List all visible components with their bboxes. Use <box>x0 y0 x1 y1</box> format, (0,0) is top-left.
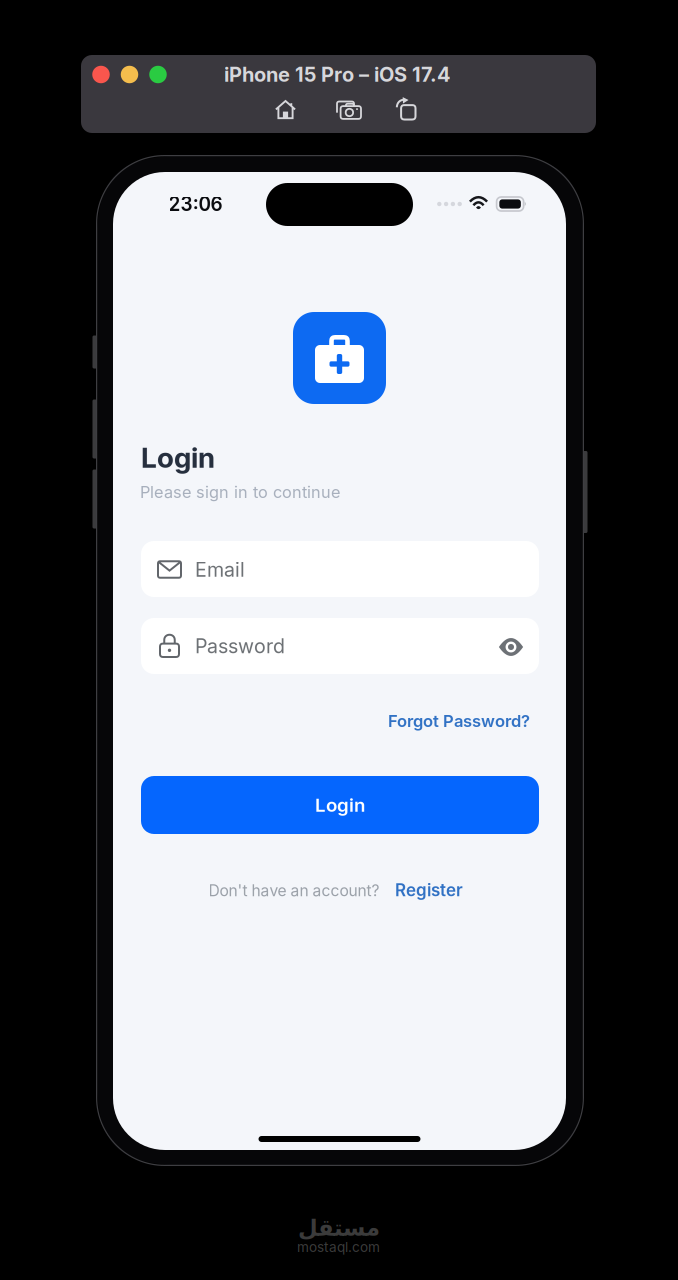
button[interactable]: Login <box>141 776 539 834</box>
staticText: Password <box>195 634 285 658</box>
button[interactable]: Home <box>270 94 301 125</box>
button[interactable]: Forgot Password? <box>383 704 535 738</box>
staticText: Please sign in to continue <box>140 482 340 502</box>
staticText: Forgot Password? <box>388 711 530 731</box>
staticText: Login <box>315 794 365 816</box>
button[interactable]: Rotate device <box>390 91 421 125</box>
staticText: iPhone 15 Pro – iOS 17.4 <box>224 62 451 87</box>
staticText: 23:06 <box>168 192 222 215</box>
staticText: مستقل <box>297 1215 379 1241</box>
button[interactable]: Show password <box>487 626 534 668</box>
button[interactable]: Register <box>391 875 467 905</box>
staticText: Don't have an account? <box>208 881 379 900</box>
staticText: mostaql.com <box>297 1239 380 1255</box>
staticText: Login <box>141 441 215 474</box>
button[interactable]: Screenshot <box>331 94 367 125</box>
staticText: Register <box>395 880 463 900</box>
staticText: Email <box>195 558 245 581</box>
